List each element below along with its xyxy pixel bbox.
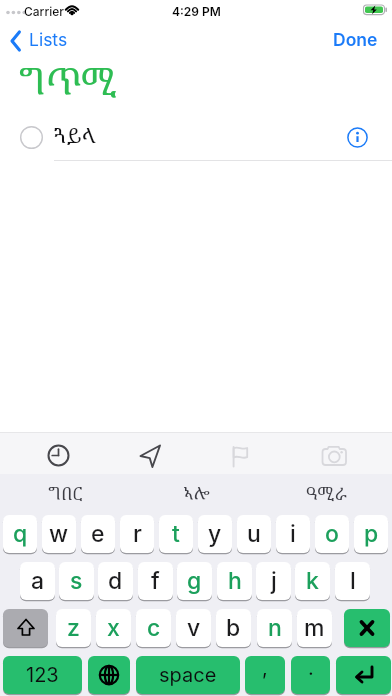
button[interactable]: . [291, 656, 330, 695]
staticText: 123 [26, 663, 59, 687]
button[interactable]: k [295, 562, 330, 601]
staticText: Carrier [24, 4, 64, 19]
button[interactable]: space [136, 656, 240, 695]
staticText: h [228, 567, 242, 595]
staticText: v [187, 614, 201, 642]
staticText: g [187, 567, 202, 595]
staticText: b [226, 614, 241, 642]
staticText: p [364, 520, 379, 548]
staticText: ግበር [48, 481, 83, 505]
staticText: ግጥሚ [19, 55, 117, 105]
button[interactable]: o [315, 515, 349, 554]
button[interactable]: l [335, 562, 370, 601]
button[interactable]: m [297, 609, 332, 648]
button[interactable] [336, 656, 391, 695]
staticText: o [325, 520, 339, 548]
staticText: i [290, 520, 296, 548]
staticText: Done [333, 29, 378, 50]
button[interactable]: d [98, 562, 133, 601]
staticText: z [67, 614, 80, 642]
staticText: s [70, 567, 83, 595]
staticText: Lists [29, 29, 68, 50]
button[interactable]: 123 [3, 656, 82, 695]
button[interactable]: ጓይላ [0, 118, 392, 160]
staticText: 4:29 PM [172, 4, 221, 19]
staticText: ዓሚራ [306, 481, 347, 505]
button[interactable] [47, 444, 70, 467]
staticText: . [308, 656, 314, 680]
staticText: ኣሎ [183, 481, 210, 505]
button[interactable]: r [120, 515, 154, 554]
staticText: a [31, 567, 45, 595]
button[interactable] [231, 444, 253, 468]
staticText: , [262, 656, 268, 680]
button[interactable]: ግበር [0, 481, 131, 513]
button[interactable]: n [257, 609, 292, 648]
button[interactable]: x [96, 609, 131, 648]
button[interactable]: v [176, 609, 211, 648]
button[interactable]: w [42, 515, 76, 554]
button[interactable]: f [138, 562, 173, 601]
staticText: ጓይላ [54, 121, 96, 150]
button[interactable]: ዓሚራ [261, 481, 392, 513]
staticText: k [306, 567, 319, 595]
staticText: n [268, 614, 282, 642]
staticText: y [208, 520, 222, 548]
button[interactable]: t [159, 515, 193, 554]
staticText: x [107, 614, 120, 642]
staticText: l [350, 567, 356, 595]
staticText: c [147, 614, 161, 642]
button[interactable] [88, 656, 130, 695]
button[interactable]: i [276, 515, 310, 554]
staticText: space [159, 663, 217, 687]
button[interactable] [139, 444, 162, 468]
button[interactable]: q [3, 515, 37, 554]
staticText: e [91, 520, 105, 548]
staticText: w [49, 520, 69, 548]
button[interactable] [344, 609, 390, 648]
button[interactable]: a [20, 562, 55, 601]
button[interactable]: p [354, 515, 388, 554]
button[interactable]: z [56, 609, 91, 648]
staticText: f [151, 567, 160, 595]
button[interactable]: j [256, 562, 291, 601]
button[interactable]: u [237, 515, 271, 554]
staticText: j [271, 567, 277, 595]
button[interactable]: g [177, 562, 212, 601]
button[interactable] [3, 609, 48, 648]
button[interactable] [321, 445, 347, 467]
button[interactable]: Done [333, 29, 385, 55]
staticText: d [108, 567, 123, 595]
button[interactable]: , [245, 656, 285, 695]
staticText: r [133, 520, 142, 548]
staticText: u [247, 520, 261, 548]
staticText: m [304, 614, 325, 642]
button[interactable]: s [59, 562, 94, 601]
staticText: q [13, 520, 28, 548]
staticText: t [172, 520, 180, 548]
button[interactable]: h [217, 562, 252, 601]
button[interactable]: ኣሎ [131, 481, 261, 513]
button[interactable]: Lists [8, 28, 70, 54]
button[interactable]: y [198, 515, 232, 554]
button[interactable]: b [216, 609, 251, 648]
button[interactable]: e [81, 515, 115, 554]
button[interactable]: c [136, 609, 171, 648]
